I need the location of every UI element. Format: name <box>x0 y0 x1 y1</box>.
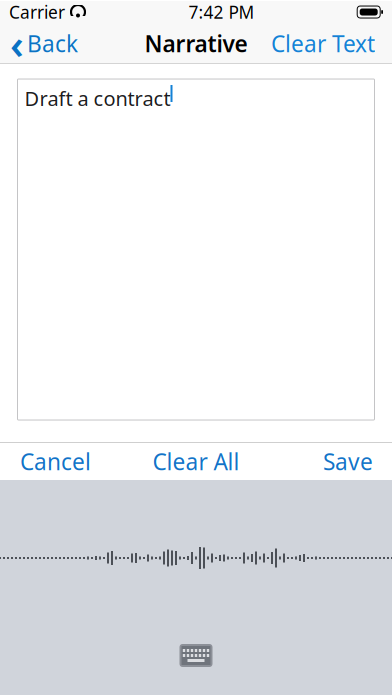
button[interactable]: Dismiss keyboard <box>171 636 220 675</box>
staticText: Clear All <box>152 446 239 476</box>
staticText: Cancel <box>20 446 91 476</box>
button[interactable]: Cancel <box>0 437 91 485</box>
staticText: ‹ <box>10 17 24 70</box>
button[interactable]: Clear All <box>138 437 253 485</box>
staticText: Narrative <box>144 28 247 58</box>
staticText: Save <box>323 446 373 476</box>
staticText: Draft a contract <box>24 85 170 112</box>
button[interactable]: ‹ <box>0 21 78 65</box>
staticText: Carrier <box>9 0 65 23</box>
staticText: Clear Text <box>271 28 375 58</box>
button[interactable]: Clear Text <box>271 21 392 65</box>
button[interactable]: Save <box>323 437 392 485</box>
staticText: 7:42 PM <box>189 0 255 23</box>
staticText: Back <box>27 28 78 58</box>
